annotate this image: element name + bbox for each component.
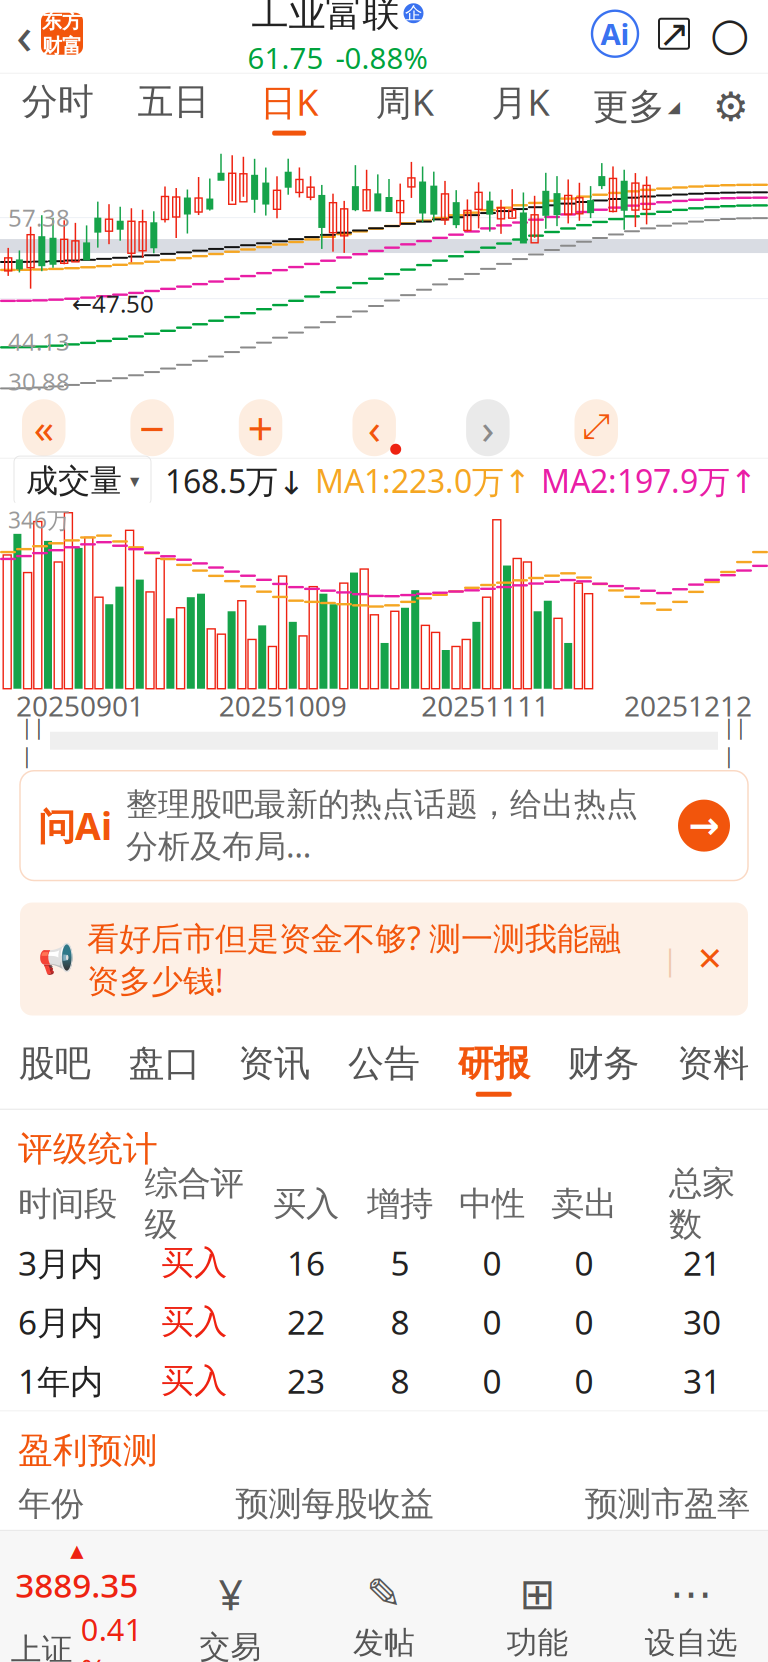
staticText: 增持: [367, 1183, 433, 1224]
staticText: 3889.35: [15, 1563, 138, 1607]
button[interactable]: ›: [466, 399, 510, 456]
staticText: 整理股吧最新的热点话题，给出热点分析及布局…: [126, 785, 638, 866]
staticText: ⚙: [713, 84, 749, 129]
button[interactable]: 分时: [0, 70, 116, 144]
staticText: ◢: [668, 98, 680, 116]
staticText: ○: [710, 8, 750, 59]
staticText: |||: [723, 712, 747, 769]
staticText: 预测每股收益: [235, 1483, 433, 1524]
staticText: 资料: [677, 1041, 749, 1086]
staticText: 44.13: [8, 325, 70, 357]
staticText: |||: [21, 712, 45, 769]
staticText: 问Ai: [38, 801, 112, 850]
staticText: 0: [482, 1300, 501, 1344]
button[interactable]: 资料: [658, 1029, 768, 1109]
button[interactable]: 看好后市但是资金不够? 测一测我能融资多少钱!: [87, 916, 621, 1001]
staticText: 23: [287, 1359, 325, 1403]
staticText: 57.38: [8, 201, 70, 233]
button[interactable]: 财务: [549, 1029, 658, 1109]
button[interactable]: 股吧: [0, 1029, 110, 1109]
button[interactable]: −: [130, 399, 174, 456]
button[interactable]: ✎: [307, 1569, 461, 1662]
staticText: 22: [287, 1300, 325, 1344]
button[interactable]: 问Ai: [0, 771, 768, 880]
button[interactable]: 日K: [231, 68, 347, 146]
staticText: 0.41%: [81, 1609, 143, 1662]
staticText: ✕: [696, 941, 723, 977]
button[interactable]: 月K: [463, 68, 578, 146]
staticText: 1年内: [18, 1359, 103, 1403]
staticText: 6月内: [18, 1300, 103, 1344]
button[interactable]: Settings: [694, 74, 768, 139]
staticText: 发帖: [353, 1624, 415, 1662]
staticText: ¥: [218, 1565, 242, 1622]
staticText: 5: [390, 1241, 409, 1285]
staticText: 盈利预测: [18, 1429, 158, 1472]
button[interactable]: 资讯: [219, 1029, 329, 1109]
button[interactable]: ▲: [0, 1541, 154, 1662]
staticText: ↗: [658, 12, 689, 55]
staticText: «: [34, 401, 54, 454]
staticText: ⊞: [520, 1569, 556, 1618]
button[interactable]: ⊞: [461, 1569, 614, 1662]
staticText: ‹: [368, 399, 381, 456]
staticText: 设自选: [645, 1624, 738, 1662]
button[interactable]: 成交量: [14, 456, 151, 505]
staticText: |: [662, 939, 678, 978]
staticText: 五日: [137, 80, 209, 124]
staticText: 工业富联: [251, 0, 399, 36]
staticText: 买入: [161, 1360, 227, 1401]
staticText: -0.88%: [335, 38, 427, 77]
button[interactable]: 周K: [347, 68, 463, 146]
button[interactable]: ⤢: [574, 399, 618, 456]
staticText: ⋯: [670, 1569, 713, 1618]
button[interactable]: Close: [690, 939, 730, 979]
staticText: 0: [482, 1241, 501, 1285]
staticText: 20250901: [16, 687, 144, 724]
button[interactable]: Back: [0, 0, 83, 69]
staticText: 东方 财富: [42, 9, 82, 58]
staticText: 看好后市但是资金不够? 测一测我能融资多少钱!: [87, 916, 621, 1001]
button[interactable]: 更多: [578, 75, 694, 139]
button[interactable]: 公告: [329, 1029, 439, 1109]
button[interactable]: ¥: [154, 1565, 307, 1662]
staticText: MA1:223.0万↑: [315, 459, 531, 502]
staticText: 买入: [273, 1183, 339, 1224]
staticText: 分时: [22, 80, 94, 124]
staticText: 企: [405, 3, 422, 24]
staticText: 31: [683, 1359, 721, 1403]
button[interactable]: 研报: [439, 1029, 549, 1109]
button[interactable]: ⋯: [614, 1569, 768, 1662]
button[interactable]: Search: [710, 14, 750, 54]
button[interactable]: AI assistant: [592, 11, 638, 57]
staticText: ✎: [366, 1569, 402, 1618]
staticText: 0: [574, 1300, 593, 1344]
staticText: 卖出: [551, 1183, 617, 1224]
staticText: 总家数: [669, 1163, 735, 1245]
staticText: 20251212: [624, 687, 752, 724]
staticText: 30.88: [8, 365, 70, 397]
staticText: 研报: [458, 1041, 530, 1086]
button[interactable]: «: [22, 399, 65, 456]
staticText: 公告: [348, 1041, 420, 1086]
staticText: 股吧: [19, 1041, 91, 1086]
staticText: 评级统计: [18, 1128, 158, 1170]
staticText: +: [247, 398, 273, 458]
staticText: →: [688, 804, 719, 847]
button[interactable]: 盘口: [110, 1029, 219, 1109]
button[interactable]: Share: [656, 16, 692, 52]
staticText: 346万: [8, 505, 70, 535]
staticText: 0: [574, 1241, 593, 1285]
staticText: 时间段: [18, 1183, 117, 1224]
staticText: 月K: [491, 78, 549, 126]
staticText: 财务: [567, 1041, 639, 1086]
staticText: 📢: [38, 942, 75, 976]
staticText: 20251111: [421, 687, 549, 724]
button[interactable]: 五日: [116, 70, 231, 144]
button[interactable]: +: [239, 399, 282, 456]
staticText: 0: [482, 1359, 501, 1403]
button[interactable]: ‹: [352, 399, 396, 456]
staticText: 买入: [161, 1301, 227, 1342]
staticText: 盘口: [129, 1041, 201, 1086]
staticText: ⤢: [582, 411, 610, 445]
